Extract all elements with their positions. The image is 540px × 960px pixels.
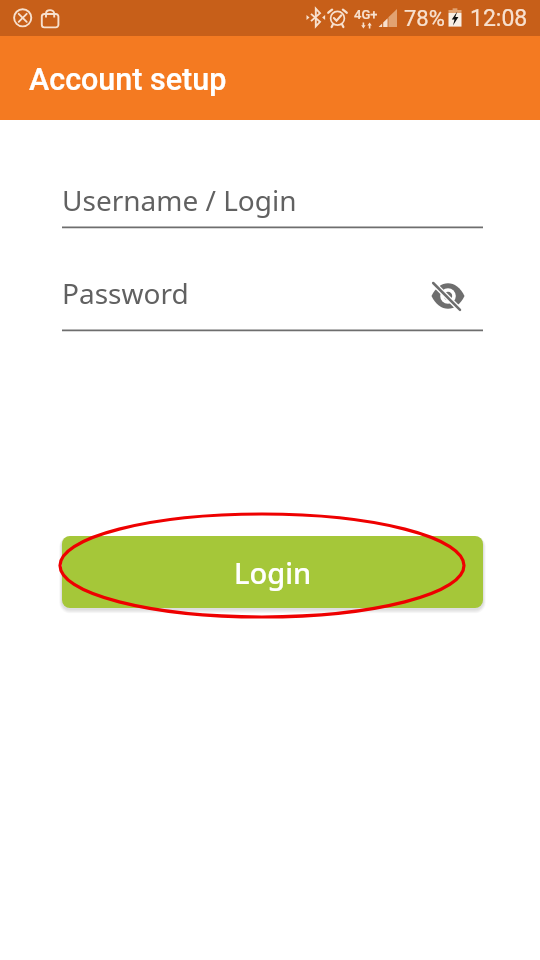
staticText: Login (234, 553, 312, 592)
staticText: Account setup (29, 62, 227, 98)
button[interactable]: Toggle password visibility (428, 276, 468, 316)
staticText: 4G+ (354, 7, 378, 22)
staticText: 12:08 (470, 5, 528, 32)
staticText: Username / Login (62, 181, 297, 219)
staticText: 78% (404, 6, 445, 32)
button[interactable]: Login (62, 536, 483, 608)
staticText: Password (62, 274, 189, 312)
